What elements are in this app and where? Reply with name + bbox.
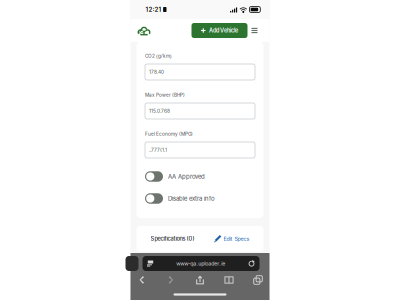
staticText: CO2 (g/km): [145, 53, 172, 59]
button[interactable]: Forward: [160, 272, 181, 287]
staticText: Fuel Economy (MPG): [145, 131, 193, 137]
button[interactable]: Menu: [247, 19, 261, 42]
staticText: Add Vehicle: [209, 27, 238, 34]
staticText: Edit Specs: [223, 235, 249, 242]
button[interactable]: 178.40: [145, 64, 255, 80]
staticText: Max Power (BHP): [145, 92, 185, 98]
button[interactable]: Disable extra info: [145, 193, 255, 204]
button[interactable]: Add Vehicle: [191, 23, 247, 38]
staticText: ..777(1.1: [149, 147, 167, 153]
button[interactable]: Uploader home: [137, 19, 150, 42]
staticText: AA Approved: [168, 173, 205, 180]
staticText: 115.0.768: [149, 108, 170, 114]
button[interactable]: AA Approved: [145, 171, 255, 182]
button[interactable]: Back: [131, 272, 152, 287]
button[interactable]: Share: [189, 272, 210, 287]
button[interactable]: Bookmarks: [218, 272, 239, 287]
staticText: www-qa.uploader.ie: [176, 260, 225, 267]
staticText: 12:21: [145, 6, 161, 13]
button[interactable]: Tabs: [247, 272, 268, 287]
button[interactable]: 115.0.768: [145, 103, 255, 119]
staticText: 178.40: [149, 69, 164, 75]
staticText: Specifications (0): [150, 235, 194, 242]
button[interactable]: ..777(1.1: [145, 142, 255, 158]
staticText: Disable extra info: [168, 195, 215, 202]
button[interactable]: Specifications (0): [136, 226, 263, 251]
button[interactable]: www-qa.uploader.ie: [142, 256, 259, 271]
